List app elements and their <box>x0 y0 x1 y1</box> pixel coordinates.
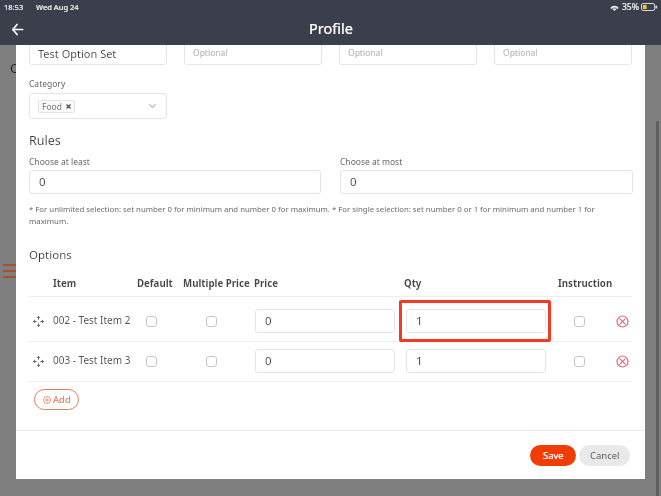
staticText: Profile <box>309 18 353 38</box>
staticText: Options <box>29 247 72 263</box>
staticText: Choose at least <box>29 156 90 168</box>
button[interactable]: Cancel <box>579 445 630 466</box>
staticText: 003 - Test Item 3 <box>53 353 131 367</box>
staticText: Qty <box>404 277 422 290</box>
button[interactable]: Back <box>5 17 29 41</box>
staticText: Food <box>42 101 62 113</box>
staticText: Save <box>543 449 564 462</box>
staticText: 0 <box>265 353 272 369</box>
button[interactable]: Food <box>29 93 167 119</box>
staticText: Optional <box>193 47 228 59</box>
staticText: 002 - Test Item 2 <box>53 313 131 327</box>
staticText: Add <box>53 393 71 406</box>
button[interactable]: Delete <box>616 355 629 368</box>
staticText: 0 <box>350 174 357 190</box>
staticText: 1 <box>416 353 423 369</box>
button[interactable]: Reorder <box>33 316 44 327</box>
staticText: 0 <box>265 313 272 329</box>
staticText: Cancel <box>590 449 620 462</box>
button[interactable]: Save <box>530 445 576 466</box>
staticText: Item <box>53 277 77 290</box>
button[interactable]: Add <box>34 389 79 410</box>
button[interactable]: Reorder <box>33 356 44 367</box>
staticText: Optional <box>348 47 383 59</box>
staticText: Instruction <box>558 277 613 290</box>
staticText: Rules <box>29 132 61 149</box>
staticText: Multiple Price <box>183 277 250 290</box>
button[interactable]: Toggle <box>206 316 217 327</box>
staticText: Choose at most <box>340 156 403 168</box>
staticText: Test Option Set <box>38 46 117 61</box>
staticText: 1 <box>416 313 423 329</box>
staticText: Category <box>29 78 66 90</box>
button[interactable]: Toggle <box>206 356 217 367</box>
staticText: Wed Aug 24 <box>36 2 79 12</box>
button[interactable]: Toggle <box>574 316 585 327</box>
button[interactable]: Delete <box>616 315 629 328</box>
staticText: Price <box>254 277 279 290</box>
button[interactable]: Toggle <box>146 316 157 327</box>
staticText: C <box>10 59 19 77</box>
button[interactable]: Toggle <box>574 356 585 367</box>
button[interactable]: Toggle <box>146 356 157 367</box>
staticText: Optional <box>503 47 538 59</box>
staticText: 0 <box>39 174 46 190</box>
staticText: 18:53 <box>4 2 24 12</box>
staticText: Default <box>137 277 173 290</box>
staticText: * For unlimited selection: set number 0 … <box>29 204 613 227</box>
staticText: 35% <box>622 1 639 13</box>
